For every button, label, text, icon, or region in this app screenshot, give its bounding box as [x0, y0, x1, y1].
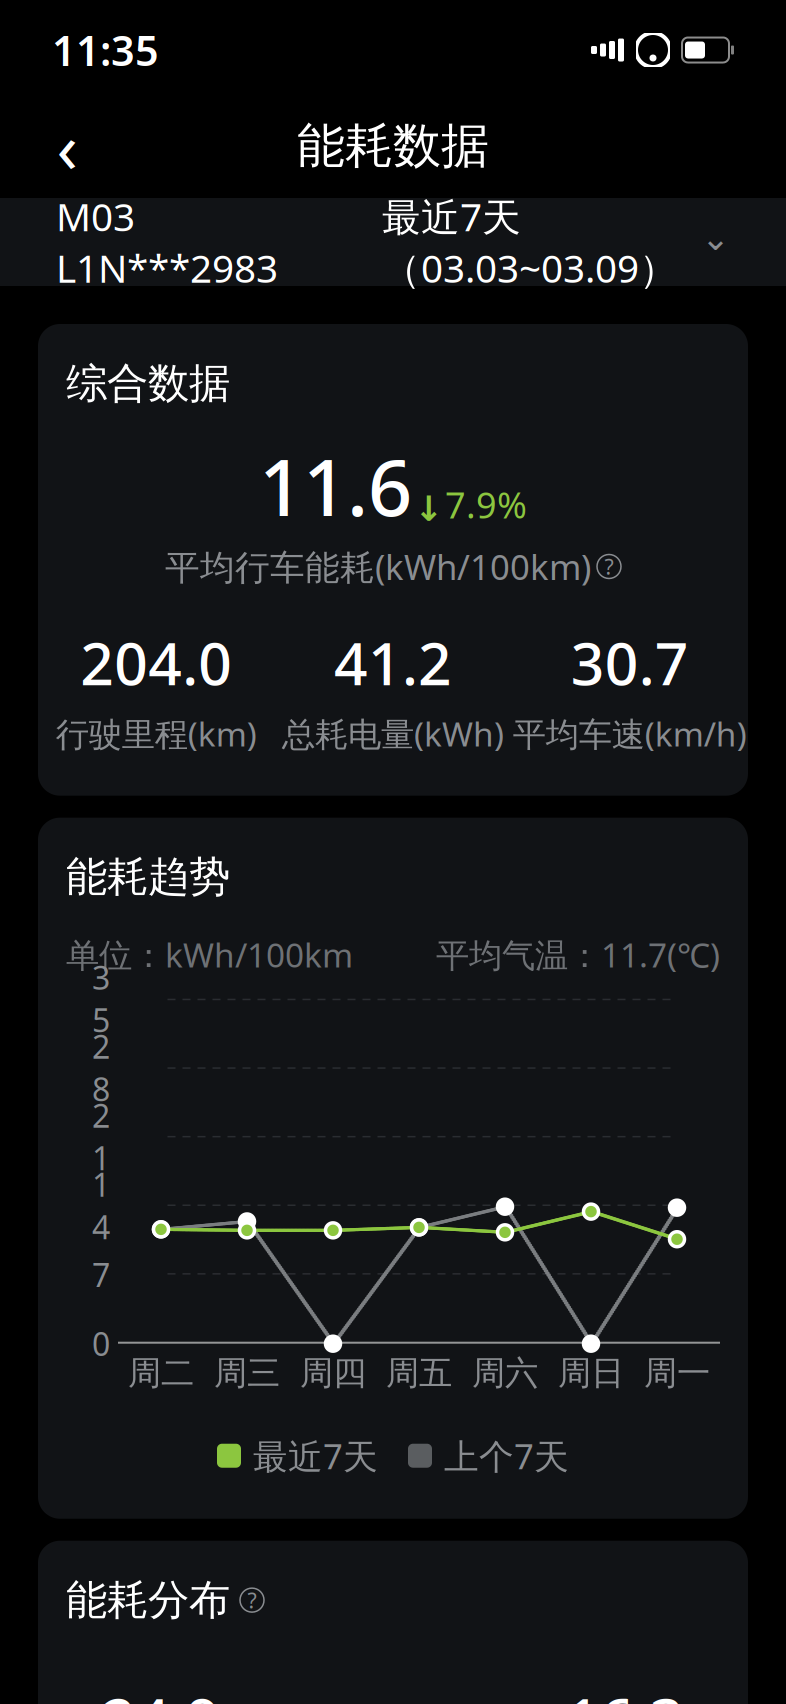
staticText: 最近7天（03.03~03.09）	[382, 191, 678, 293]
staticText: 最近7天	[253, 1433, 378, 1479]
button[interactable]: Back	[32, 111, 102, 181]
staticText: 能耗分布	[66, 1575, 230, 1625]
staticText: 周四	[300, 1353, 366, 1394]
staticText: ?	[604, 552, 613, 581]
staticText: ⌄	[690, 218, 730, 258]
staticText: 平均气温：11.7(℃)	[436, 932, 720, 977]
staticText: 0	[92, 1322, 110, 1365]
staticText: 28	[92, 1025, 110, 1110]
staticText: 11:35	[52, 23, 159, 77]
staticText: 35	[92, 956, 110, 1041]
button[interactable]: M03 L1N***2983	[0, 198, 786, 286]
staticText: 16.3	[566, 1679, 684, 1704]
staticText: 周六	[472, 1353, 538, 1394]
staticText: 单位：kWh/100km	[66, 932, 353, 977]
staticText: 41.2	[334, 623, 452, 701]
staticText: 14	[92, 1163, 110, 1248]
staticText: 24.9	[102, 1679, 220, 1704]
staticText: 周日	[558, 1353, 624, 1394]
staticText: 30.7	[571, 623, 689, 701]
staticText: 总耗电量(kWh)	[282, 711, 504, 756]
staticText: ?	[247, 1586, 256, 1614]
staticText: 平均行车能耗(kWh/100km)	[165, 543, 591, 589]
staticText: 周二	[128, 1353, 194, 1394]
staticText: 上个7天	[444, 1433, 569, 1479]
staticText: 21	[92, 1094, 110, 1179]
staticText: 周一	[644, 1353, 710, 1394]
staticText: 7.9%	[445, 481, 527, 528]
staticText: 204.0	[80, 623, 232, 701]
staticText: 平均车速(km/h)	[513, 711, 747, 756]
staticText: 能耗数据	[297, 116, 489, 175]
staticText: 7	[92, 1253, 110, 1296]
staticText: 周三	[214, 1353, 280, 1394]
staticText: 周五	[386, 1353, 452, 1394]
staticText: ‹	[56, 100, 77, 192]
staticText: M03 L1N***2983	[56, 191, 278, 293]
staticText: 行驶里程(km)	[56, 711, 257, 756]
staticText: 能耗趋势	[66, 852, 230, 902]
staticText: 综合数据	[66, 358, 230, 409]
staticText: ↓	[414, 489, 443, 528]
staticText: 11.6	[259, 435, 412, 537]
